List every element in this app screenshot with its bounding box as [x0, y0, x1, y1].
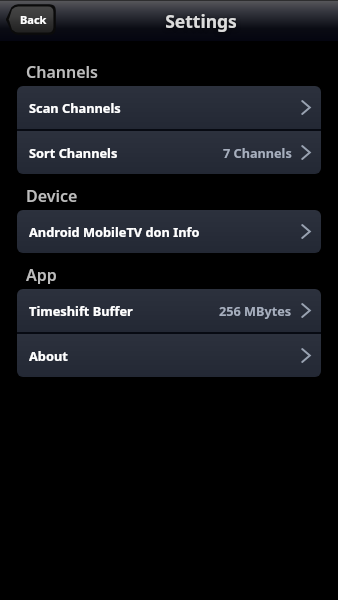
- staticText: Back: [20, 12, 47, 27]
- staticText: 256 MBytes: [219, 302, 292, 319]
- button[interactable]: Back: [6, 5, 55, 34]
- staticText: App: [26, 264, 57, 284]
- button[interactable]: Scan Channels: [17, 86, 321, 131]
- button[interactable]: Sort Channels: [17, 131, 321, 174]
- staticText: Timeshift Buffer: [29, 302, 133, 319]
- staticText: Settings: [165, 9, 237, 33]
- button[interactable]: About: [17, 334, 321, 377]
- button[interactable]: Android MobileTV don Info: [17, 210, 321, 253]
- staticText: Android MobileTV don Info: [29, 223, 200, 240]
- staticText: 7 Channels: [223, 144, 292, 161]
- staticText: About: [29, 347, 68, 364]
- button[interactable]: Timeshift Buffer: [17, 289, 321, 334]
- staticText: Channels: [26, 61, 98, 81]
- staticText: Sort Channels: [29, 144, 118, 161]
- staticText: Scan Channels: [29, 99, 121, 116]
- staticText: Device: [26, 185, 78, 205]
